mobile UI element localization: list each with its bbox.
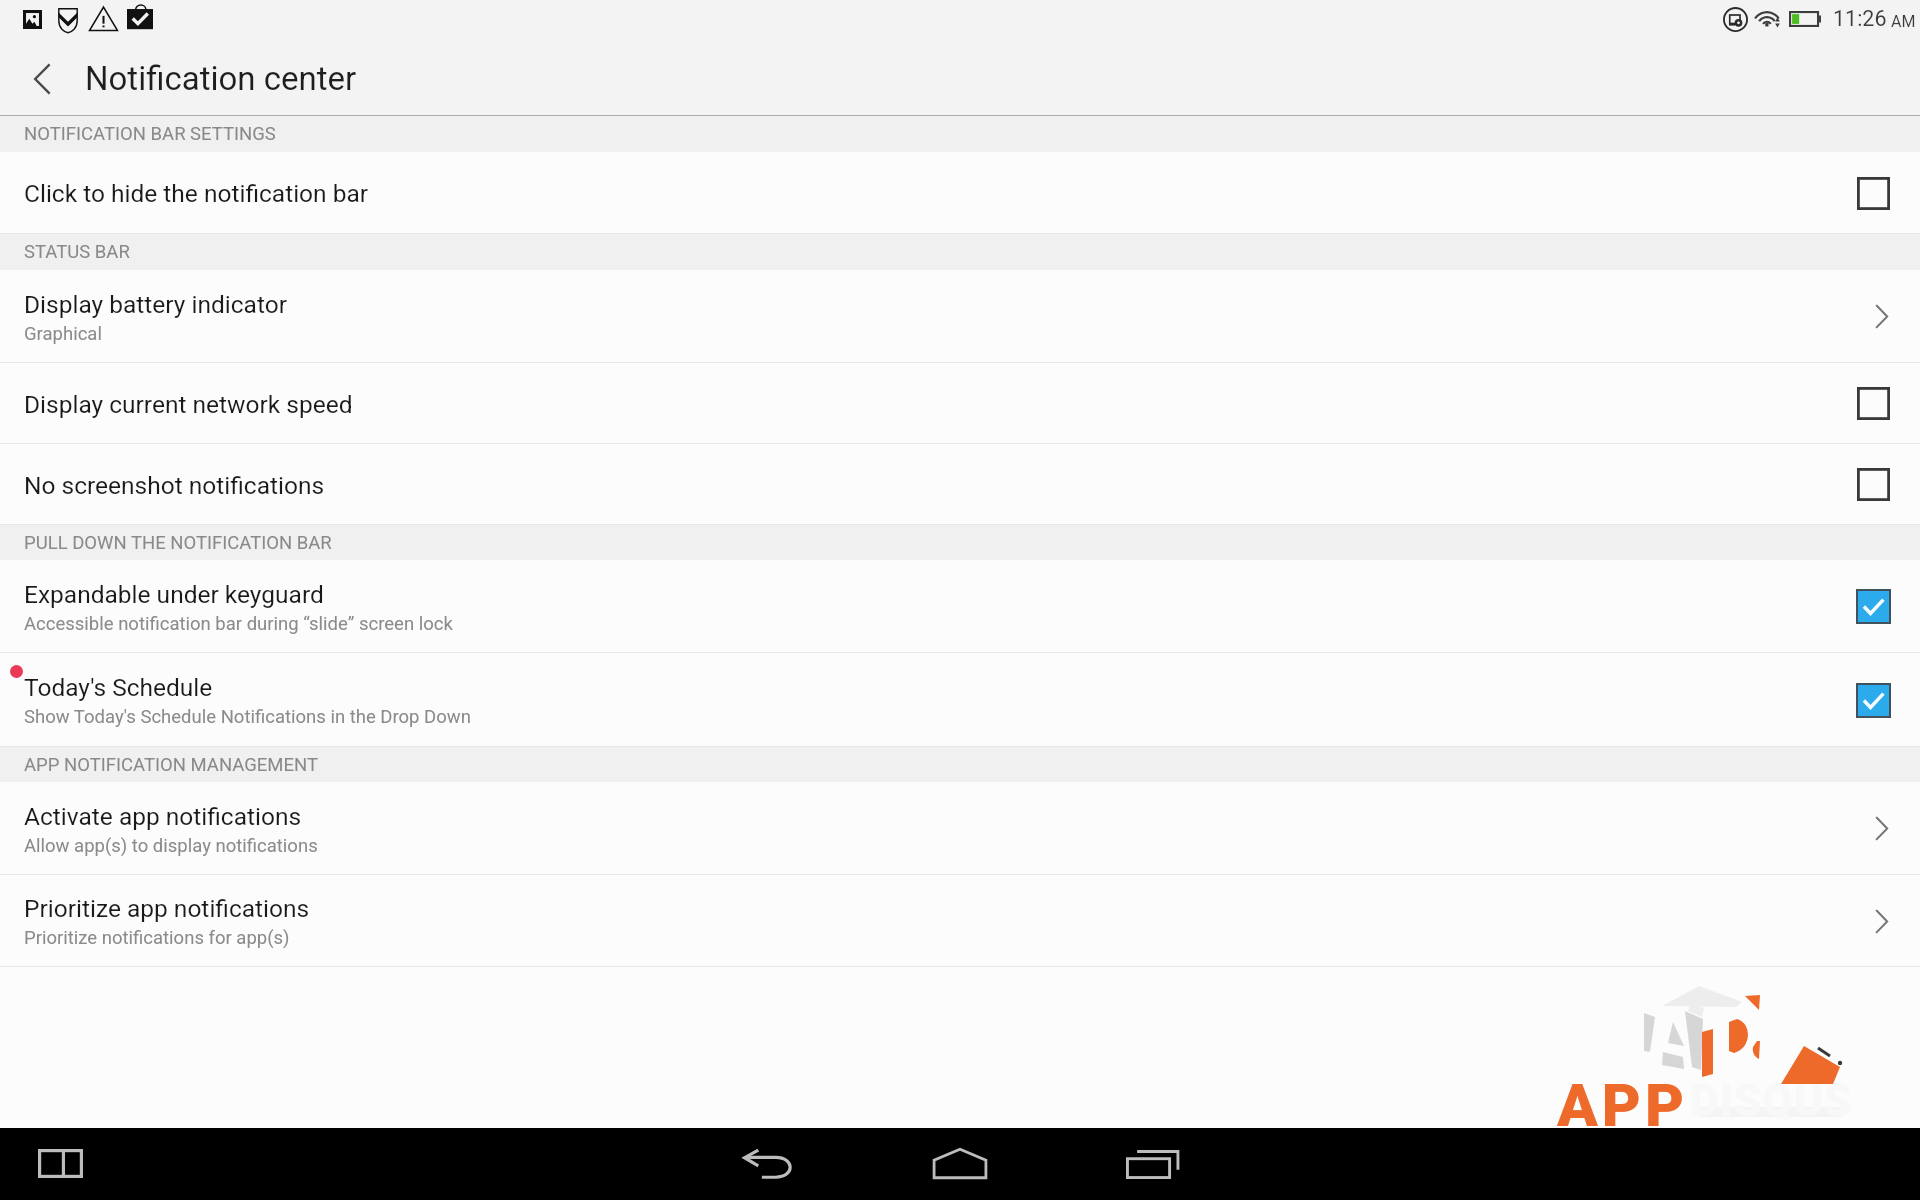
button[interactable]: Back bbox=[0, 44, 74, 115]
staticText: Allow app(s) to display notifications bbox=[24, 835, 318, 857]
button[interactable]: Toggle Click to hide the notification ba… bbox=[1841, 161, 1905, 225]
staticText: Display battery indicator bbox=[24, 290, 287, 319]
staticText: Graphical bbox=[24, 323, 102, 345]
button[interactable]: Expandable under keyguard bbox=[0, 560, 1920, 652]
staticText: No screenshot notifications bbox=[24, 471, 325, 500]
staticText: APP NOTIFICATION MANAGEMENT bbox=[24, 754, 319, 776]
button[interactable]: Toggle No screenshot notifications bbox=[1841, 452, 1905, 516]
button[interactable]: Display battery indicator bbox=[0, 270, 1920, 362]
staticText: Click to hide the notification bar bbox=[24, 179, 369, 208]
button[interactable]: Display current network speed bbox=[0, 363, 1920, 443]
staticText: Today's Schedule bbox=[24, 673, 213, 702]
button[interactable]: Recents bbox=[1102, 1128, 1202, 1200]
button[interactable]: Prioritize app notifications bbox=[0, 875, 1920, 966]
other: Open Activate app notifications bbox=[1850, 796, 1914, 860]
staticText: AM bbox=[1891, 12, 1916, 31]
button[interactable]: Toggle Expandable under keyguard bbox=[1841, 574, 1905, 638]
staticText: NOTIFICATION BAR SETTINGS bbox=[24, 123, 276, 145]
staticText: STATUS BAR bbox=[24, 241, 130, 263]
staticText: Prioritize notifications for app(s) bbox=[24, 927, 290, 949]
staticText: Activate app notifications bbox=[24, 802, 302, 831]
button[interactable]: No screenshot notifications bbox=[0, 444, 1920, 524]
button[interactable]: Today's Schedule bbox=[0, 653, 1920, 746]
staticText: DISQUS bbox=[1690, 1075, 1853, 1127]
staticText: APP bbox=[1557, 1070, 1689, 1140]
button[interactable]: Toggle Today's Schedule bbox=[1841, 668, 1905, 732]
other: Open Display battery indicator bbox=[1850, 284, 1914, 348]
button[interactable]: Back bbox=[718, 1128, 818, 1200]
button[interactable]: Split screen bbox=[8, 1128, 113, 1200]
staticText: Expandable under keyguard bbox=[24, 580, 324, 609]
button[interactable]: Home bbox=[910, 1128, 1010, 1200]
staticText: Notification center bbox=[85, 59, 357, 98]
staticText: Prioritize app notifications bbox=[24, 894, 310, 923]
staticText: PULL DOWN THE NOTIFICATION BAR bbox=[24, 532, 332, 554]
staticText: Display current network speed bbox=[24, 390, 353, 419]
staticText: Show Today's Schedule Notifications in t… bbox=[24, 706, 471, 728]
staticText: Accessible notification bar during “slid… bbox=[24, 613, 453, 635]
button[interactable]: Activate app notifications bbox=[0, 782, 1920, 874]
button[interactable]: Click to hide the notification bar bbox=[0, 152, 1920, 233]
staticText: 11:26 bbox=[1833, 6, 1887, 31]
button[interactable]: Toggle Display current network speed bbox=[1841, 371, 1905, 435]
other: Open Prioritize app notifications bbox=[1850, 889, 1914, 953]
